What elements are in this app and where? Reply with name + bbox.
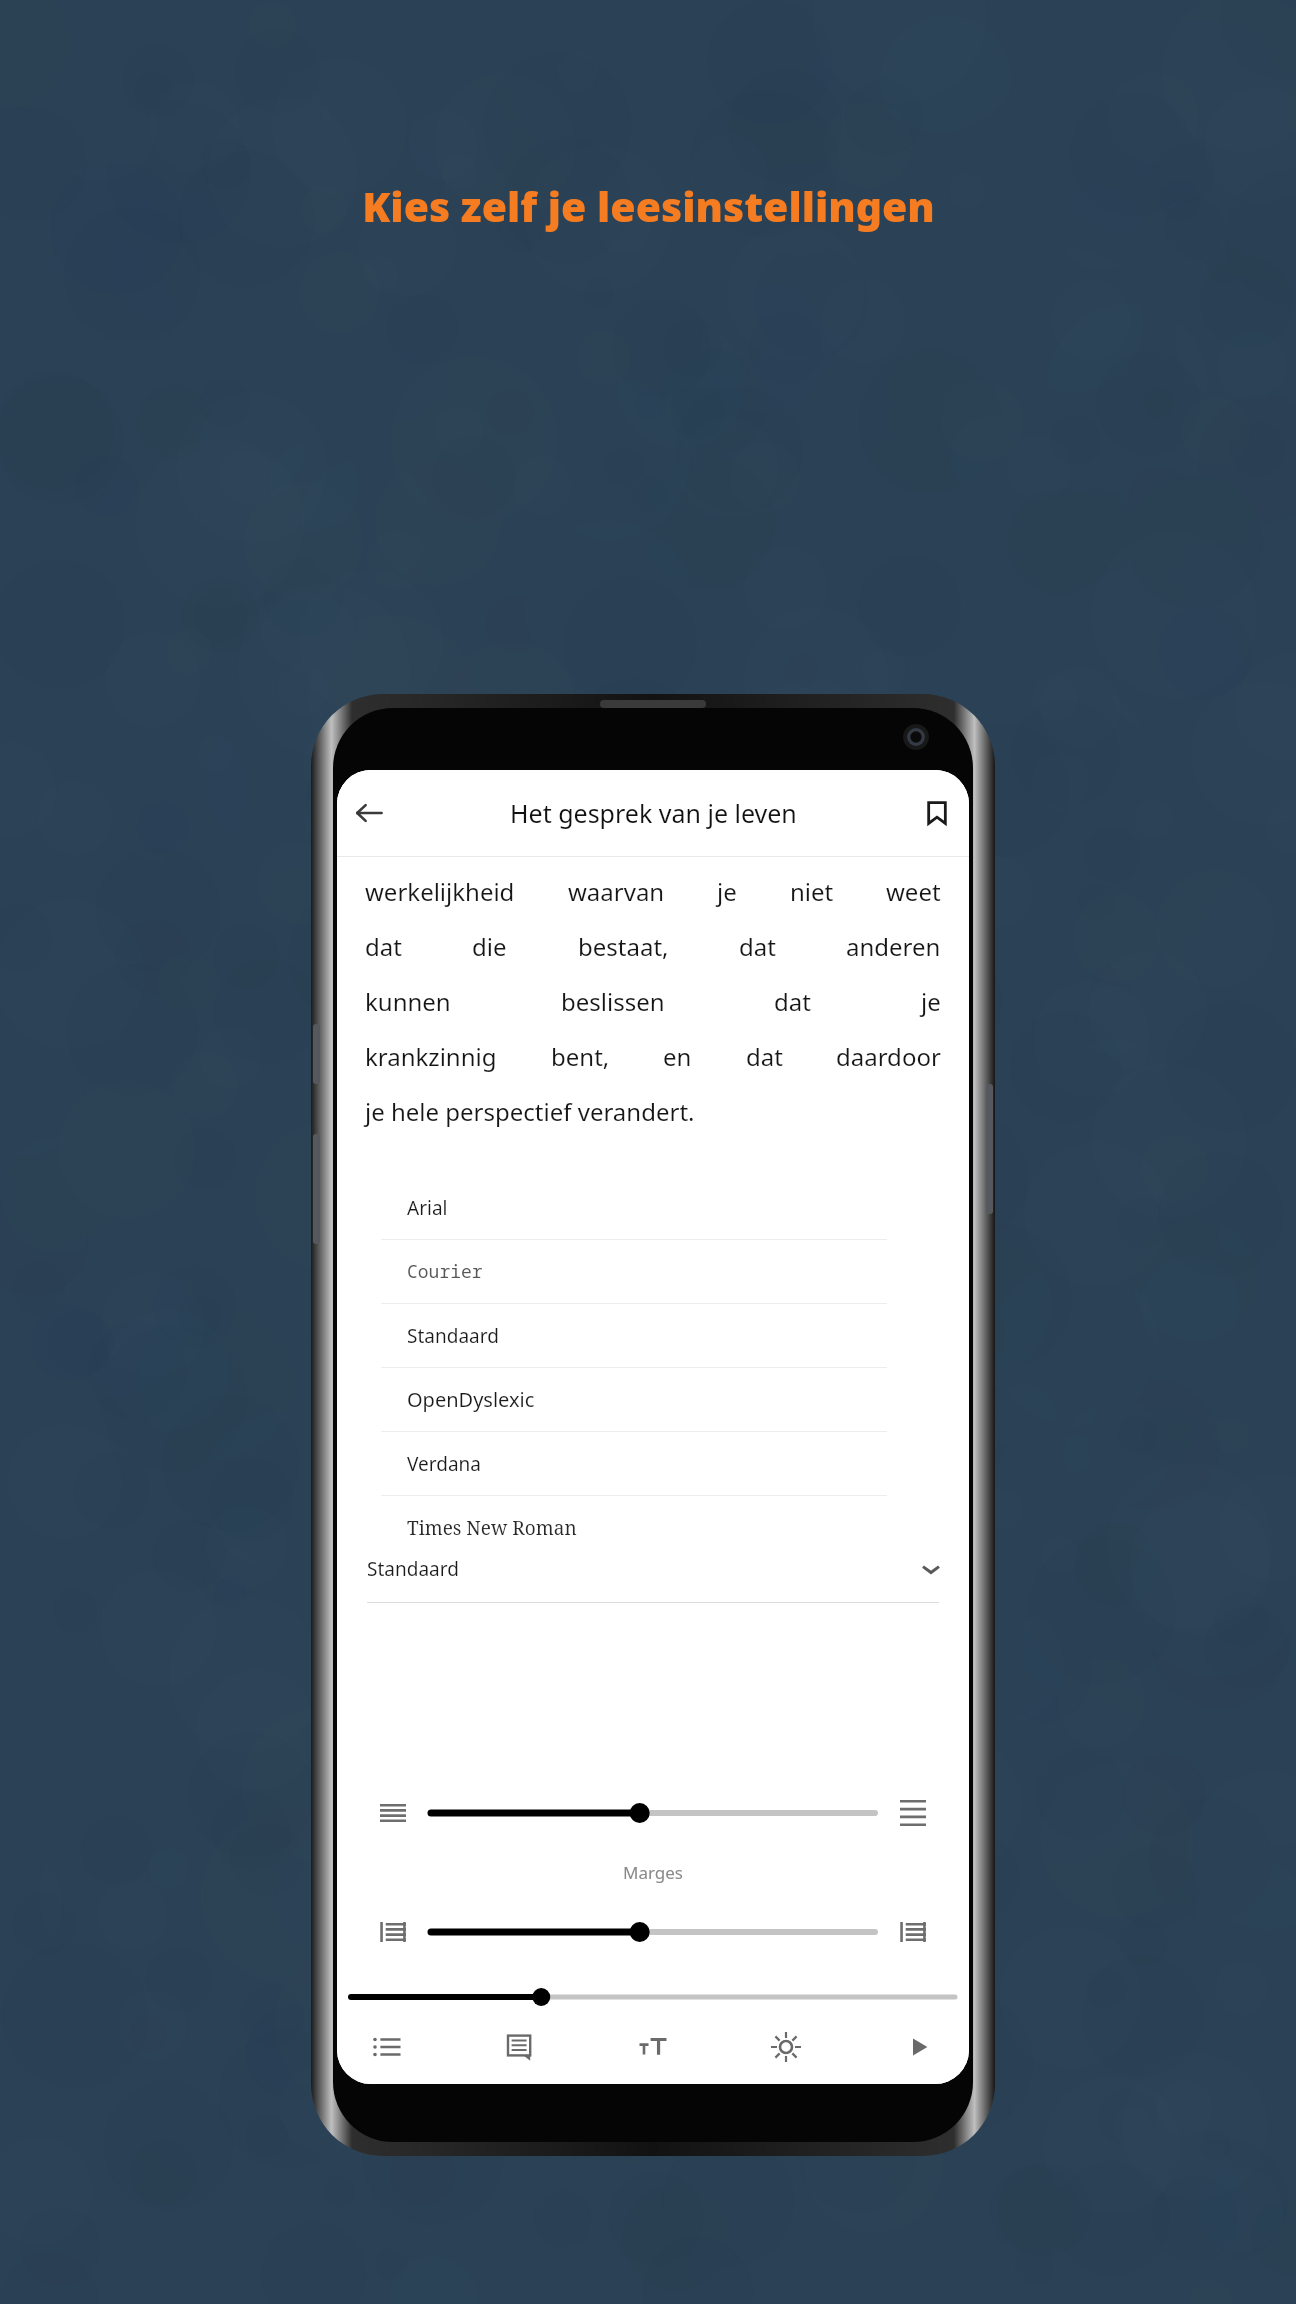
staticText: Courier [407,1259,483,1284]
button[interactable]: Terug [337,781,401,845]
button[interactable]: Voorlezen [887,2015,951,2079]
button[interactable] [431,1798,875,1828]
button[interactable]: Bladwijzer [905,781,969,845]
staticText: kunnen [365,985,451,1018]
button[interactable] [431,1917,875,1947]
staticText: bestaat, [578,930,669,963]
staticText: dat [746,1040,783,1073]
staticText: waarvan [568,875,665,908]
staticText: Times New Roman [407,1515,577,1541]
staticText: en [663,1040,692,1073]
button[interactable]: Lettergrootte [621,2015,685,2079]
staticText: daardoor [836,1040,941,1073]
button[interactable]: Helderheid [754,2015,818,2079]
button[interactable]: Times New Roman [381,1496,887,1559]
staticText: dat [365,930,402,963]
staticText: Het gesprek van je leven [510,796,797,830]
button[interactable]: Standaard [351,1536,955,1602]
button[interactable]: OpenDyslexic [381,1368,887,1431]
staticText: OpenDyslexic [407,1386,535,1413]
button[interactable]: Meer [893,1793,933,1833]
button[interactable]: Minder [373,1912,413,1952]
staticText: je hele perspectief verandert. [365,1095,695,1128]
button[interactable]: Verdana [381,1432,887,1495]
staticText: je [717,875,737,908]
staticText: dat [739,930,776,963]
button[interactable]: Minder [373,1793,413,1833]
staticText: dat [774,985,811,1018]
button[interactable]: Meer [893,1912,933,1952]
button[interactable]: Inhoudsopgave [355,2015,419,2079]
staticText: Marges [623,1861,683,1884]
staticText: Kies zelf je leesinstellingen [362,178,935,234]
button[interactable]: Notities [488,2015,552,2079]
button[interactable]: Arial [381,1176,887,1239]
staticText: krankzinnig [365,1040,497,1073]
staticText: Standaard [407,1323,499,1349]
button[interactable]: Standaard [381,1304,887,1367]
staticText: Arial [407,1195,448,1221]
staticText: werkelijkheid [365,875,515,908]
staticText: die [472,930,507,963]
staticText: Verdana [407,1451,481,1477]
staticText: beslissen [561,985,665,1018]
staticText: weet [886,875,941,908]
staticText: niet [790,875,834,908]
staticText: bent, [551,1040,610,1073]
staticText: Standaard [367,1556,459,1582]
staticText: je [921,985,941,1018]
button[interactable]: Courier [381,1240,887,1303]
staticText: anderen [846,930,941,963]
